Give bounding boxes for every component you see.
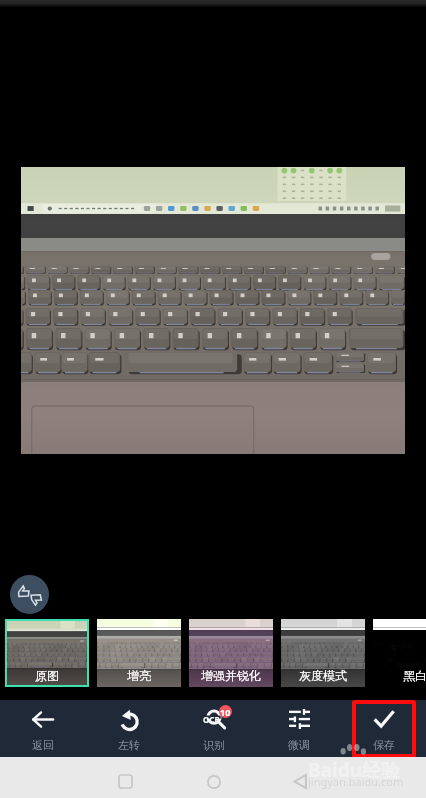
staticText: 10 [220, 706, 231, 718]
button[interactable]: 微调 [256, 700, 341, 757]
button[interactable]: 黑白 [373, 619, 426, 687]
staticText: 识别 [203, 738, 225, 752]
other: Recents [119, 775, 132, 788]
staticText: 左转 [118, 738, 140, 752]
button[interactable]: 原图 [5, 619, 89, 687]
staticText: 返回 [32, 738, 54, 752]
button[interactable]: 保存 [341, 700, 426, 757]
staticText: 增亮 [127, 668, 151, 683]
button[interactable]: 返回 [0, 700, 86, 757]
button[interactable]: Rate result [10, 575, 49, 614]
staticText: 微调 [288, 738, 310, 752]
staticText: OCR [203, 714, 220, 725]
button[interactable]: 增亮 [97, 619, 181, 687]
other: Home [207, 775, 221, 789]
button[interactable]: OCR [171, 700, 256, 757]
button[interactable]: 左转 [86, 700, 171, 757]
button[interactable]: 灰度模式 [281, 619, 365, 687]
staticText: jingyan.baidu.com [308, 774, 404, 789]
staticText: 灰度模式 [299, 668, 347, 683]
other: Back [293, 774, 308, 789]
staticText: 增强并锐化 [201, 668, 261, 683]
staticText: Baidu经验 [308, 757, 401, 783]
button[interactable]: 增强并锐化 [189, 619, 273, 687]
staticText: 保存 [373, 738, 395, 752]
staticText: 原图 [35, 668, 59, 683]
staticText: 黑白 [403, 668, 426, 683]
